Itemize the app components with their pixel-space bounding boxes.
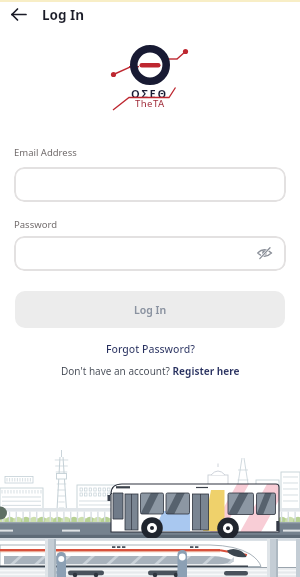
staticText: Email Address (14, 146, 77, 159)
button[interactable] (14, 236, 286, 271)
staticText: ΟΣΕΘ (131, 86, 169, 101)
staticText: Password (14, 218, 57, 231)
button[interactable]: Log In (15, 291, 285, 328)
staticText: Log In (134, 303, 167, 317)
button[interactable] (14, 167, 286, 202)
staticText: TheTA (135, 97, 165, 110)
button[interactable]: Don't have an account? Register here (61, 364, 240, 378)
button[interactable]: Forgot Password? (106, 342, 195, 356)
staticText: Log In (42, 6, 85, 24)
button[interactable] (8, 5, 32, 25)
